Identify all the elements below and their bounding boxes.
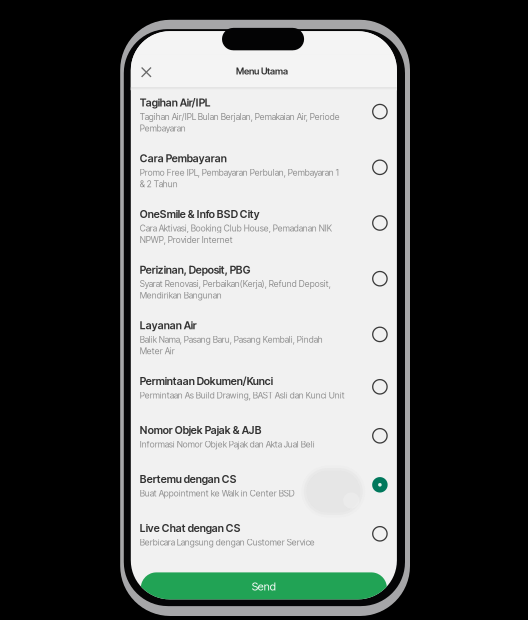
button[interactable]: Nomor Objek Pajak & AJB — [131, 418, 397, 467]
staticText: Nomor Objek Pajak & AJB — [140, 424, 262, 437]
staticText: Balik Nama, Pasang Baru, Pasang Kembali,… — [140, 334, 323, 356]
staticText: Cara Pembayaran — [140, 152, 227, 165]
button[interactable]: Cara Pembayaran — [131, 146, 397, 202]
staticText: Bertemu dengan CS — [140, 473, 237, 486]
staticText: Permintaan Dokumen/Kunci — [140, 375, 273, 388]
staticText: Layanan Air — [140, 319, 197, 332]
staticText: Promo Free IPL, Pembayaran Perbulan, Pem… — [140, 167, 339, 189]
staticText: Berbicara Langsung dengan Customer Servi… — [140, 537, 315, 548]
staticText: OneSmile & Info BSD City — [140, 208, 260, 220]
staticText: Tagihan Air/IPL — [140, 96, 211, 109]
staticText: Syarat Renovasi, Perbaikan(Kerja), Refun… — [140, 279, 331, 301]
button[interactable]: Layanan Air — [131, 313, 397, 369]
staticText: Tagihan Air/IPL Bulan Berjalan, Pemakaia… — [140, 112, 340, 134]
button[interactable]: Perizinan, Deposit, PBG — [131, 257, 397, 313]
button[interactable]: OneSmile & Info BSD City — [131, 202, 397, 257]
staticText: Send — [252, 580, 276, 593]
staticText: Informasi Nomor Objek Pajak dan Akta Jua… — [140, 439, 315, 450]
button[interactable]: Live Chat dengan CS — [131, 516, 397, 565]
staticText: Menu Utama — [236, 65, 288, 77]
staticText: Permintaan As Build Drawing, BAST Asli d… — [140, 390, 345, 401]
staticText: Perizinan, Deposit, PBG — [140, 263, 251, 276]
button[interactable]: Tagihan Air/IPL — [131, 90, 397, 146]
staticText: Live Chat dengan CS — [140, 522, 241, 535]
button[interactable]: Permintaan Dokumen/Kunci — [131, 369, 397, 418]
staticText: Buat Appointment ke Walk in Center BSD — [140, 488, 295, 499]
button[interactable]: Send — [141, 572, 387, 603]
button[interactable]: Bertemu dengan CS — [131, 467, 397, 516]
button[interactable]: Close — [133, 59, 159, 85]
staticText: Cara Aktivasi, Booking Club House, Pemad… — [140, 223, 332, 245]
